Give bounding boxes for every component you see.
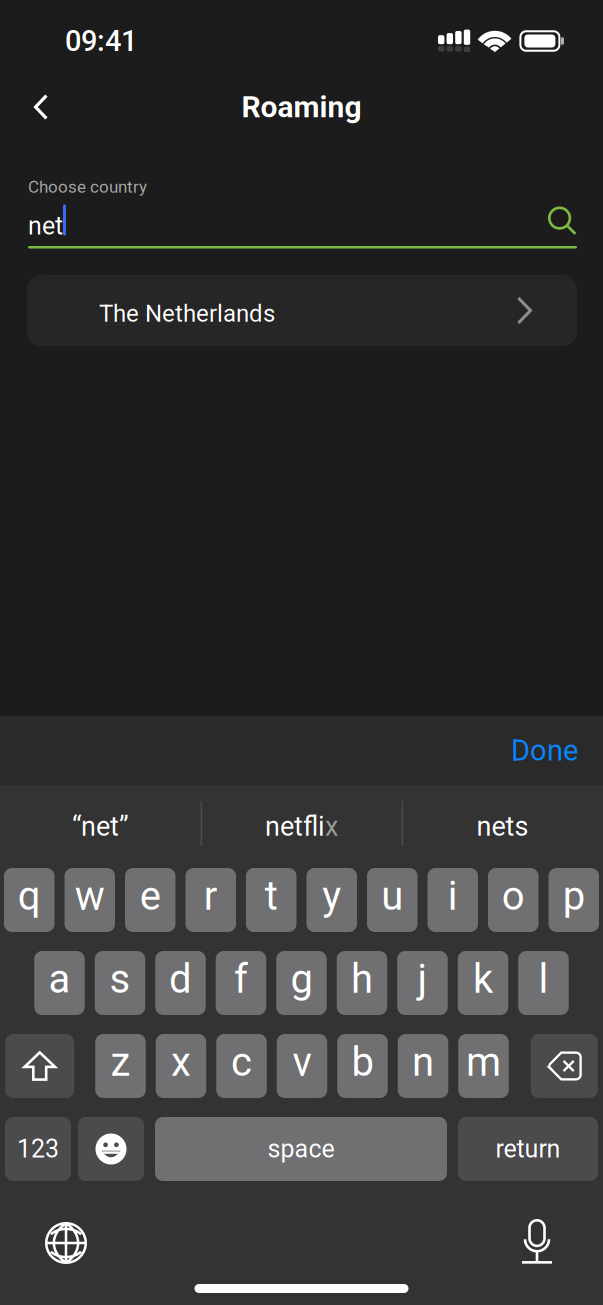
staticText: o: [502, 873, 525, 919]
staticText: return: [495, 1134, 560, 1164]
staticText: g: [290, 956, 312, 1002]
staticText: x: [171, 1039, 191, 1085]
staticText: s: [109, 956, 130, 1002]
button[interactable]: q: [4, 868, 54, 932]
staticText: nets: [476, 811, 528, 842]
staticText: l: [538, 956, 548, 1002]
staticText: 09:41: [65, 24, 137, 58]
staticText: a: [48, 956, 70, 1002]
button[interactable]: 123: [5, 1117, 71, 1181]
staticText: f: [234, 956, 248, 1002]
button[interactable]: o: [488, 868, 538, 932]
button[interactable]: d: [155, 951, 206, 1015]
staticText: w: [75, 873, 105, 919]
staticText: t: [265, 873, 278, 919]
staticText: Roaming: [241, 89, 361, 125]
button[interactable]: “net”: [0, 788, 201, 865]
button[interactable]: The Netherlands: [27, 275, 577, 346]
staticText: i: [448, 873, 458, 919]
staticText: netfli: [265, 811, 325, 842]
staticText: x: [325, 811, 338, 842]
button[interactable]: Next keyboard: [34, 1221, 98, 1267]
staticText: c: [231, 1039, 252, 1085]
button[interactable]: h: [337, 951, 387, 1015]
staticText: q: [18, 873, 41, 919]
staticText: Choose country: [28, 177, 147, 197]
button[interactable]: v: [277, 1034, 327, 1098]
staticText: j: [417, 956, 427, 1002]
button[interactable]: w: [64, 868, 115, 932]
button[interactable]: Delete: [531, 1034, 598, 1098]
button[interactable]: Back: [17, 83, 65, 131]
staticText: y: [322, 873, 341, 919]
button[interactable]: Done: [495, 729, 594, 771]
button[interactable]: g: [276, 951, 327, 1015]
button[interactable]: k: [458, 951, 508, 1015]
button[interactable]: b: [337, 1034, 388, 1098]
button[interactable]: l: [518, 951, 569, 1015]
staticText: The Netherlands: [99, 299, 275, 327]
button[interactable]: return: [458, 1117, 598, 1181]
button[interactable]: m: [458, 1034, 509, 1098]
button[interactable]: i: [427, 868, 478, 932]
staticText: e: [140, 873, 161, 919]
button[interactable]: netfli: [201, 788, 402, 865]
staticText: p: [563, 873, 585, 919]
button[interactable]: c: [216, 1034, 267, 1098]
staticText: k: [473, 956, 493, 1002]
button[interactable]: s: [95, 951, 145, 1015]
staticText: d: [169, 956, 192, 1002]
staticText: 123: [17, 1134, 59, 1164]
button[interactable]: space: [155, 1117, 447, 1181]
button[interactable]: Dictation: [505, 1221, 569, 1267]
button[interactable]: t: [246, 868, 296, 932]
staticText: b: [351, 1039, 373, 1085]
button[interactable]: nets: [402, 788, 603, 865]
button[interactable]: j: [397, 951, 448, 1015]
button[interactable]: p: [548, 868, 599, 932]
staticText: space: [267, 1134, 334, 1164]
button[interactable]: f: [216, 951, 266, 1015]
button[interactable]: r: [185, 868, 236, 932]
button[interactable]: e: [125, 868, 175, 932]
staticText: “net”: [72, 811, 129, 842]
staticText: v: [292, 1039, 311, 1085]
staticText: n: [412, 1039, 434, 1085]
staticText: h: [351, 956, 373, 1002]
button[interactable]: a: [34, 951, 85, 1015]
button[interactable]: y: [306, 868, 357, 932]
staticText: m: [466, 1039, 501, 1085]
button[interactable]: n: [398, 1034, 448, 1098]
button[interactable]: Shift: [5, 1034, 74, 1098]
staticText: net: [28, 211, 63, 240]
button[interactable]: u: [367, 868, 417, 932]
button[interactable]: x: [156, 1034, 206, 1098]
staticText: Done: [511, 733, 578, 767]
button[interactable]: z: [95, 1034, 146, 1098]
staticText: z: [110, 1039, 130, 1085]
staticText: r: [204, 873, 218, 919]
button[interactable]: Emoji: [78, 1117, 144, 1181]
staticText: u: [381, 873, 403, 919]
